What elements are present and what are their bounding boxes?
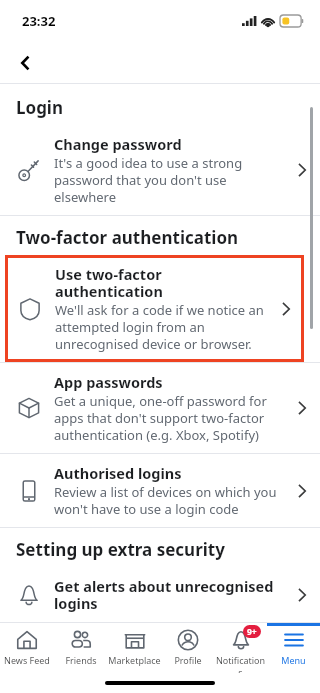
button[interactable]: Use two-factor authentication [5, 255, 304, 362]
staticText: Login [16, 96, 64, 119]
staticText: 9+ [247, 626, 257, 638]
staticText: App passwords [54, 372, 163, 392]
staticText: 23:32 [22, 12, 56, 30]
button[interactable]: Authorised logins [0, 454, 320, 527]
button[interactable]: Get alerts about unrecognised logins [0, 567, 320, 622]
staticText: Marketplace [108, 654, 161, 666]
button[interactable]: Friends [54, 623, 108, 673]
staticText: Change password [54, 134, 182, 154]
staticText: Notifications [214, 654, 267, 673]
button[interactable]: Back [6, 44, 44, 82]
button[interactable]: Marketplace [108, 623, 161, 673]
staticText: Authorised logins [54, 463, 182, 483]
staticText: Use two-factor authentication [55, 264, 272, 301]
button[interactable]: Profile [161, 623, 214, 673]
staticText: Menu [281, 654, 306, 666]
staticText: Setting up extra security [16, 538, 225, 561]
staticText: Get alerts about unrecognised logins [54, 576, 288, 613]
staticText: Get a unique, one-off password for apps … [54, 392, 288, 444]
staticText: Friends [65, 654, 97, 666]
button[interactable]: Menu [267, 623, 320, 673]
staticText: It's a good idea to use a strong passwor… [54, 154, 288, 206]
button[interactable]: App passwords [0, 363, 320, 453]
button[interactable]: Change password [0, 125, 320, 215]
staticText: News Feed [4, 654, 50, 666]
staticText: Review a list of devices on which you wo… [54, 483, 288, 518]
button[interactable]: 9+ [214, 623, 267, 673]
button[interactable]: News Feed [0, 623, 54, 673]
staticText: Profile [174, 654, 202, 666]
staticText: We'll ask for a code if we notice an att… [55, 301, 272, 353]
staticText: Two-factor authentication [16, 226, 239, 249]
